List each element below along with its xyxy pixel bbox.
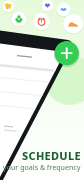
staticText: SCHEDULE (22, 148, 81, 163)
staticText: your goals & frequency (3, 163, 81, 173)
